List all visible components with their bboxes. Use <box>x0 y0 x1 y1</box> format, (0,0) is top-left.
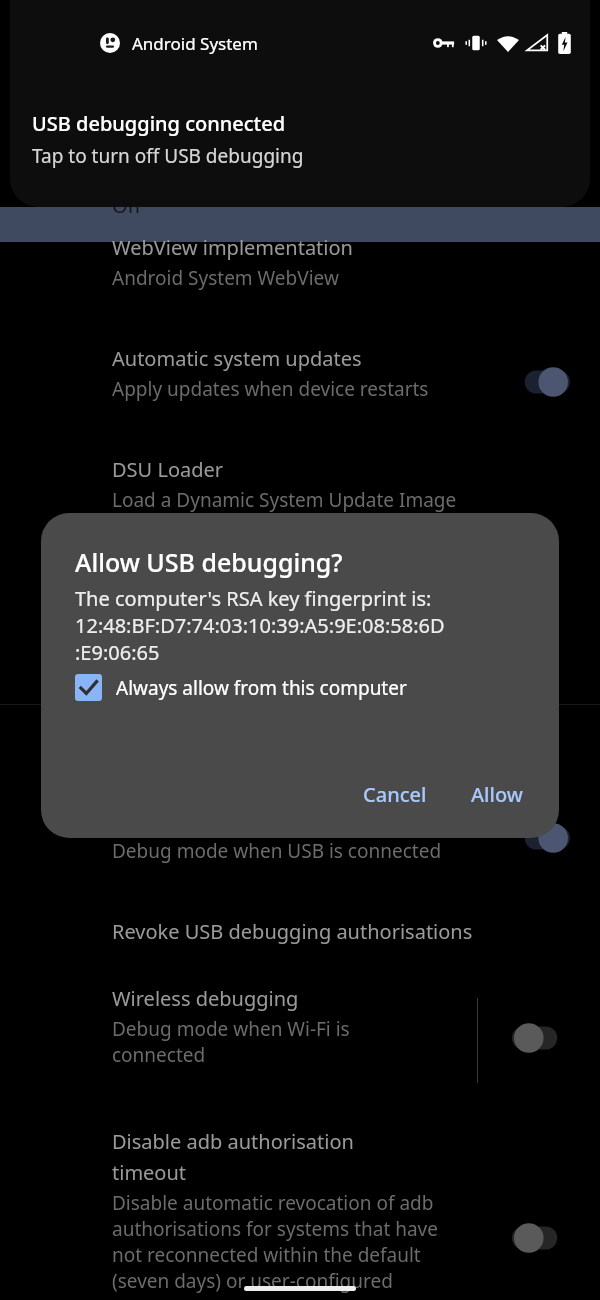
staticText: Automatic system updates <box>112 345 362 372</box>
button[interactable]: Android System <box>10 0 590 207</box>
staticText: Cancel <box>363 781 427 808</box>
button[interactable]: Disable adb authorisation timeout toggle <box>512 1218 570 1258</box>
button[interactable]: Wireless debugging <box>0 985 600 1089</box>
button[interactable]: Wireless debugging toggle <box>512 1018 570 1058</box>
button[interactable]: Cancel <box>349 773 441 816</box>
staticText: Android System <box>132 32 258 55</box>
staticText: Allow USB debugging? <box>75 545 343 579</box>
staticText: Load a Dynamic System Update Image <box>112 487 457 513</box>
staticText: Disable automatic revocation of adb auth… <box>112 1190 438 1294</box>
staticText: The computer's RSA key fingerprint is: 1… <box>75 585 445 666</box>
staticText: Disable adb authorisation timeout <box>112 1128 354 1186</box>
button[interactable]: Automatic system updates <box>0 345 600 423</box>
button[interactable]: Disable adb authorisation timeout <box>0 1128 600 1298</box>
button[interactable]: DSU Loader <box>0 456 600 534</box>
button[interactable]: Allow <box>457 773 537 816</box>
button[interactable]: WebView implementation <box>0 234 600 312</box>
button[interactable]: Revoke USB debugging authorisations <box>0 900 600 962</box>
button[interactable]: Automatic system updates toggle <box>512 362 570 402</box>
staticText: Off <box>112 192 142 219</box>
staticText: Wireless debugging <box>112 985 299 1012</box>
staticText: Allow <box>471 781 523 808</box>
staticText: Android System WebView <box>112 265 339 291</box>
staticText: Debug mode when USB is connected <box>112 838 442 864</box>
staticText: Revoke USB debugging authorisations <box>112 918 473 945</box>
staticText: Apply updates when device restarts <box>112 376 429 402</box>
button[interactable]: Always allow from this computer <box>75 674 407 701</box>
staticText: Tap to turn off USB debugging <box>32 143 304 169</box>
staticText: USB debugging connected <box>32 110 286 137</box>
staticText: Always allow from this computer <box>116 675 407 701</box>
staticText: DSU Loader <box>112 456 224 483</box>
staticText: WebView implementation <box>112 234 353 261</box>
staticText: Debug mode when Wi-Fi is connected <box>112 1016 350 1067</box>
